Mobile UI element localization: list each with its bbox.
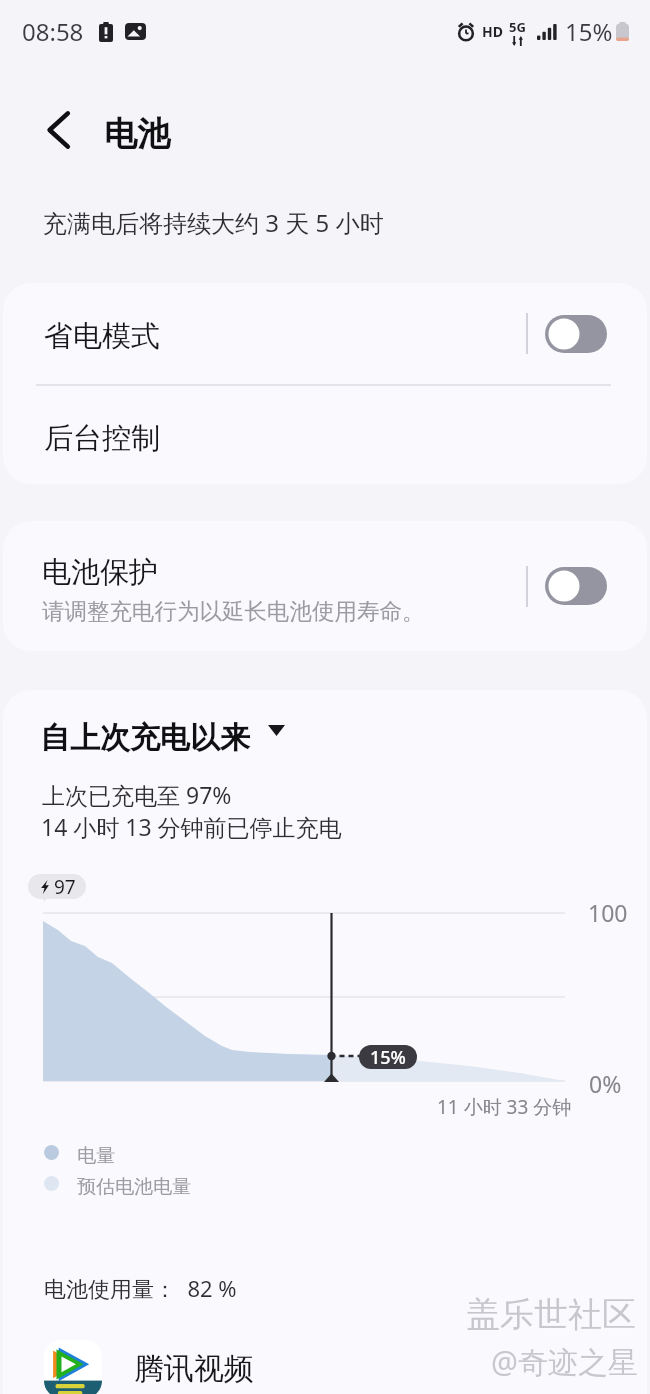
- staticText: 15%: [565, 15, 613, 48]
- staticText: 电池保护: [42, 554, 158, 591]
- button[interactable]: 电池保护: [3, 521, 647, 651]
- button[interactable]: 后台控制: [3, 386, 647, 484]
- staticText: 请调整充电行为以延长电池使用寿命。: [42, 597, 425, 625]
- staticText: 盖乐世社区: [466, 1293, 636, 1336]
- button[interactable]: 腾讯视频: [0, 1337, 650, 1394]
- staticText: 97: [54, 874, 76, 899]
- staticText: 15%: [370, 1045, 406, 1069]
- staticText: 预估电池电量: [77, 1175, 191, 1199]
- staticText: 电量: [77, 1144, 115, 1168]
- staticText: 电池: [104, 113, 170, 155]
- button[interactable]: Power saving toggle: [545, 315, 607, 353]
- staticText: 盖乐世社区: [467, 1294, 637, 1337]
- staticText: 充满电后将持续大约 3 天 5 小时: [43, 206, 384, 239]
- staticText: 电池使用量： 82 %: [44, 1273, 237, 1303]
- button[interactable]: Battery protection toggle: [545, 567, 607, 605]
- staticText: HD: [482, 22, 503, 41]
- staticText: 14 小时 13 分钟前已停止充电: [41, 811, 342, 842]
- staticText: 08:58: [22, 15, 84, 48]
- staticText: 5G: [509, 18, 526, 36]
- staticText: 上次已充电至 97%: [42, 779, 232, 810]
- button[interactable]: 省电模式: [3, 283, 647, 384]
- button[interactable]: Back: [36, 106, 84, 154]
- staticText: 后台控制: [44, 420, 160, 457]
- staticText: 自上次充电以来: [40, 719, 250, 757]
- staticText: 腾讯视频: [134, 1350, 254, 1388]
- staticText: 11 小时 33 分钟: [437, 1094, 572, 1120]
- staticText: 0%: [589, 1068, 622, 1099]
- button[interactable]: 自上次充电以来: [40, 719, 285, 757]
- staticText: @奇迹之星: [491, 1341, 638, 1382]
- staticText: 100: [588, 897, 628, 928]
- staticText: @奇迹之星: [492, 1342, 639, 1383]
- staticText: 省电模式: [44, 318, 160, 355]
